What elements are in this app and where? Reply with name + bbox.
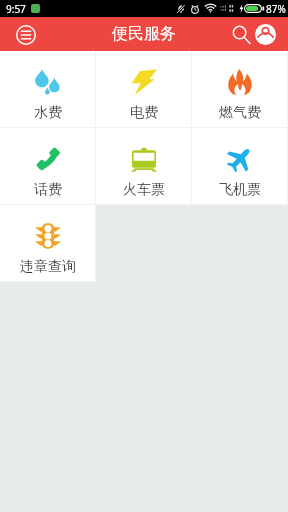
button[interactable]: 话费: [0, 128, 96, 205]
button[interactable]: 飞机票: [192, 128, 288, 205]
staticText: 87%: [266, 2, 286, 16]
staticText: 水费: [34, 104, 62, 122]
button[interactable]: 水费: [0, 51, 96, 128]
button[interactable]: Profile: [251, 20, 279, 48]
button[interactable]: Search: [227, 20, 255, 48]
button[interactable]: 电费: [96, 51, 192, 128]
staticText: 飞机票: [219, 181, 261, 199]
staticText: 电费: [130, 104, 158, 122]
staticText: 9:57: [6, 2, 26, 16]
button[interactable]: 燃气费: [192, 51, 288, 128]
button[interactable]: Menu: [11, 20, 40, 49]
button[interactable]: 火车票: [96, 128, 192, 205]
staticText: 违章查询: [20, 258, 76, 276]
staticText: 燃气费: [219, 104, 261, 122]
button[interactable]: 违章查询: [0, 205, 96, 282]
staticText: 火车票: [123, 181, 165, 199]
staticText: 话费: [34, 181, 62, 199]
staticText: 便民服务: [112, 24, 176, 44]
